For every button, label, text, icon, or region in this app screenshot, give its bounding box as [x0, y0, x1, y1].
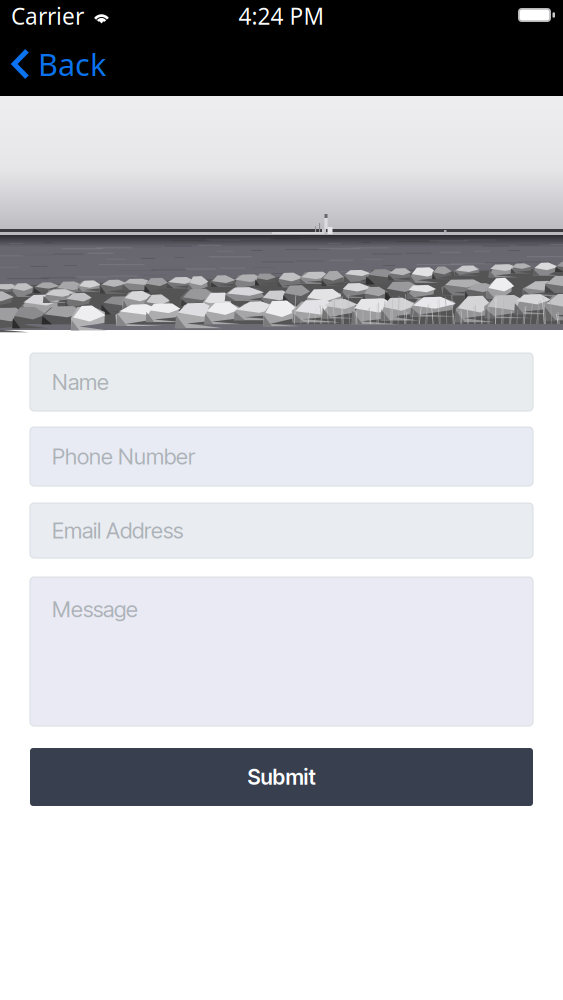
button[interactable]: Name — [30, 353, 533, 411]
staticText: Message — [52, 596, 138, 623]
staticText: Back — [38, 44, 106, 84]
button[interactable]: Phone Number — [30, 427, 533, 486]
staticText: 4:24 PM — [238, 1, 324, 31]
staticText: Submit — [247, 764, 315, 790]
button[interactable]: Message — [30, 577, 533, 726]
staticText: Email Address — [52, 517, 183, 544]
button[interactable]: Submit — [30, 748, 533, 806]
staticText: Phone Number — [52, 443, 195, 470]
button[interactable]: Email Address — [30, 503, 533, 558]
button[interactable]: Back — [0, 32, 160, 96]
staticText: Carrier — [11, 1, 84, 31]
staticText: Name — [52, 369, 109, 395]
